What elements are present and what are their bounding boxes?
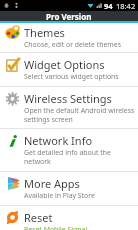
staticText: Themes xyxy=(24,25,65,40)
staticText: Open the default Android wireless xyxy=(24,106,135,115)
staticText: Pro Version xyxy=(46,11,92,21)
button[interactable]: Reset xyxy=(0,206,138,230)
button[interactable]: More Apps xyxy=(0,172,138,206)
staticText: 18:42 xyxy=(116,1,136,11)
staticText: Reset Mobile Signal xyxy=(24,225,88,230)
staticText: settings screen xyxy=(24,115,73,124)
staticText: Wireless Settings xyxy=(24,91,112,106)
button[interactable]: Network Info xyxy=(0,129,138,172)
staticText: 94 xyxy=(104,1,113,11)
button[interactable]: Widget Options xyxy=(0,53,138,87)
button[interactable]: Themes xyxy=(0,23,138,53)
button[interactable]: Wireless Settings xyxy=(0,87,138,129)
staticText: More Apps xyxy=(24,176,80,191)
staticText: Get detailed info about the xyxy=(24,148,111,157)
staticText: Widget Options xyxy=(24,57,105,72)
staticText: network xyxy=(24,157,51,166)
staticText: Network Info xyxy=(24,133,93,148)
staticText: Reset xyxy=(24,210,53,225)
staticText: Choose, edit or delete themes xyxy=(24,40,121,49)
staticText: Select various widget options xyxy=(24,72,119,81)
staticText: Available in Play Store xyxy=(24,191,95,200)
